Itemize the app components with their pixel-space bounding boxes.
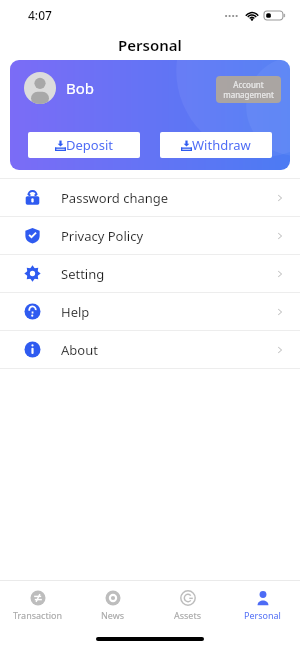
staticText: Personal [244, 609, 281, 621]
button[interactable]: Help [0, 293, 300, 330]
staticText: Transaction [13, 609, 62, 621]
staticText: Personal [118, 35, 182, 55]
staticText: 4:07 [28, 7, 52, 23]
staticText: Help [61, 303, 90, 321]
staticText: Setting [61, 265, 105, 283]
button[interactable]: Personal [225, 581, 300, 629]
staticText: Withdraw [192, 136, 251, 154]
staticText: Privacy Policy [61, 227, 144, 245]
button[interactable]: Password change [0, 179, 300, 216]
button[interactable]: Withdraw [160, 132, 272, 158]
button[interactable]: News [75, 581, 150, 629]
button[interactable]: Account management [216, 76, 281, 103]
button[interactable]: Transaction [0, 581, 75, 629]
staticText: Assets [174, 609, 202, 621]
button[interactable]: Deposit [28, 132, 140, 158]
button[interactable]: About [0, 331, 300, 368]
button[interactable]: Setting [0, 255, 300, 292]
button[interactable]: Privacy Policy [0, 217, 300, 254]
staticText: Account management [223, 79, 274, 100]
button[interactable]: Assets [150, 581, 225, 629]
staticText: About [61, 341, 98, 359]
staticText: Bob [66, 78, 95, 98]
staticText: Deposit [66, 136, 113, 154]
staticText: Password change [61, 189, 169, 207]
staticText: News [101, 609, 125, 621]
